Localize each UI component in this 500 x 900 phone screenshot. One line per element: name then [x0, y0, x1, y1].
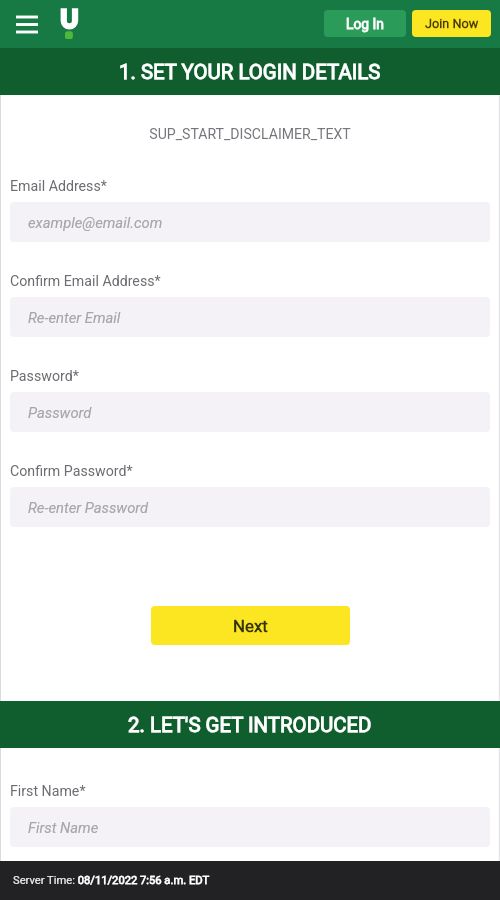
- staticText: Next: [233, 616, 268, 636]
- staticText: Re-enter Email: [28, 309, 121, 326]
- staticText: Server Time: 08/11/2022 7:56 a.m. EDT: [13, 874, 210, 887]
- staticText: First Name*: [10, 783, 86, 800]
- staticText: Join Now: [425, 16, 479, 31]
- staticText: 2. LET'S GET INTRODUCED: [128, 713, 372, 737]
- button[interactable]: Join Now: [412, 10, 491, 37]
- button[interactable]: Re-enter Password: [10, 487, 490, 527]
- button[interactable]: Home: [56, 4, 84, 44]
- button[interactable]: Re-enter Email: [10, 297, 490, 337]
- button[interactable]: First Name: [10, 807, 490, 847]
- button[interactable]: Open navigation menu: [12, 8, 43, 40]
- staticText: SUP_START_DISCLAIMER_TEXT: [0, 126, 500, 143]
- staticText: 1. SET YOUR LOGIN DETAILS: [119, 60, 381, 84]
- button[interactable]: example@email.com: [10, 202, 490, 242]
- button[interactable]: Next: [151, 606, 350, 645]
- staticText: Confirm Password*: [10, 463, 133, 480]
- button[interactable]: Password: [10, 392, 490, 432]
- staticText: Email Address*: [10, 178, 107, 195]
- staticText: Re-enter Password: [28, 499, 149, 516]
- staticText: Password: [28, 404, 92, 421]
- staticText: example@email.com: [28, 214, 163, 231]
- button[interactable]: Log In: [324, 10, 406, 37]
- staticText: Log In: [346, 16, 384, 32]
- staticText: Confirm Email Address*: [10, 273, 161, 290]
- staticText: Password*: [10, 368, 79, 385]
- staticText: First Name: [28, 819, 99, 836]
